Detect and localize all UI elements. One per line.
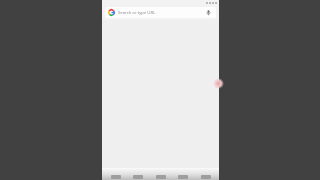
- button[interactable]: Search: [152, 174, 170, 180]
- button[interactable]: Discover: [129, 174, 147, 180]
- button[interactable]: More: [197, 174, 215, 180]
- staticText: Search or type URL: [118, 10, 204, 16]
- button[interactable]: Saved: [174, 174, 192, 180]
- button[interactable]: Voice search: [204, 8, 213, 17]
- button[interactable]: Home: [107, 174, 125, 180]
- button[interactable]: Search or type URL: [105, 7, 216, 18]
